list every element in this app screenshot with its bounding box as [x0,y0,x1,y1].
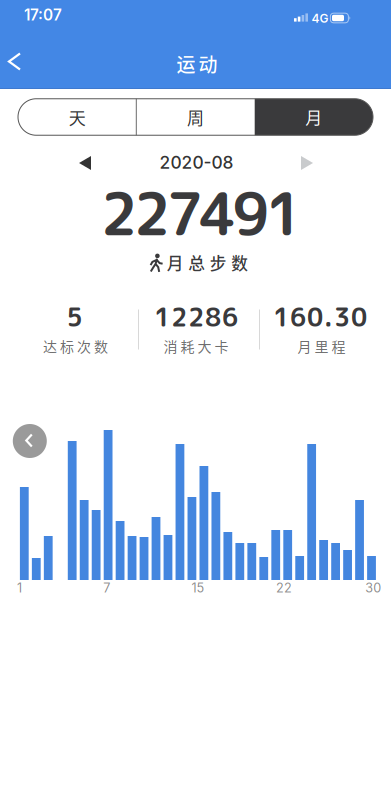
staticText: 1 [17,580,22,596]
staticText: 2020-08 [159,152,233,173]
button[interactable]: 月 [255,99,373,135]
button[interactable] [0,40,40,84]
button[interactable] [70,148,100,178]
staticText: 15 [191,580,204,596]
staticText: 5 [66,299,82,335]
staticText: 月里程 [297,336,345,356]
staticText: 17:07 [24,6,62,24]
staticText: 227491 [100,173,302,253]
staticText: 天 [69,105,86,129]
staticText: 消耗大卡 [163,336,228,356]
button[interactable] [292,148,322,178]
staticText: 运动 [176,50,217,77]
staticText: 12286 [154,299,238,335]
staticText: 7 [103,580,110,596]
button[interactable] [13,424,47,458]
staticText: 160.30 [273,299,367,335]
button[interactable]: 天 [18,99,136,135]
staticText: 4G [311,11,328,25]
staticText: 22 [276,580,292,596]
staticText: 达标次数 [43,336,108,356]
staticText: 周 [187,105,204,129]
staticText: 月 [305,105,322,129]
staticText: 月总步数 [167,250,248,274]
button[interactable]: 周 [136,99,255,135]
staticText: 30 [365,580,381,596]
